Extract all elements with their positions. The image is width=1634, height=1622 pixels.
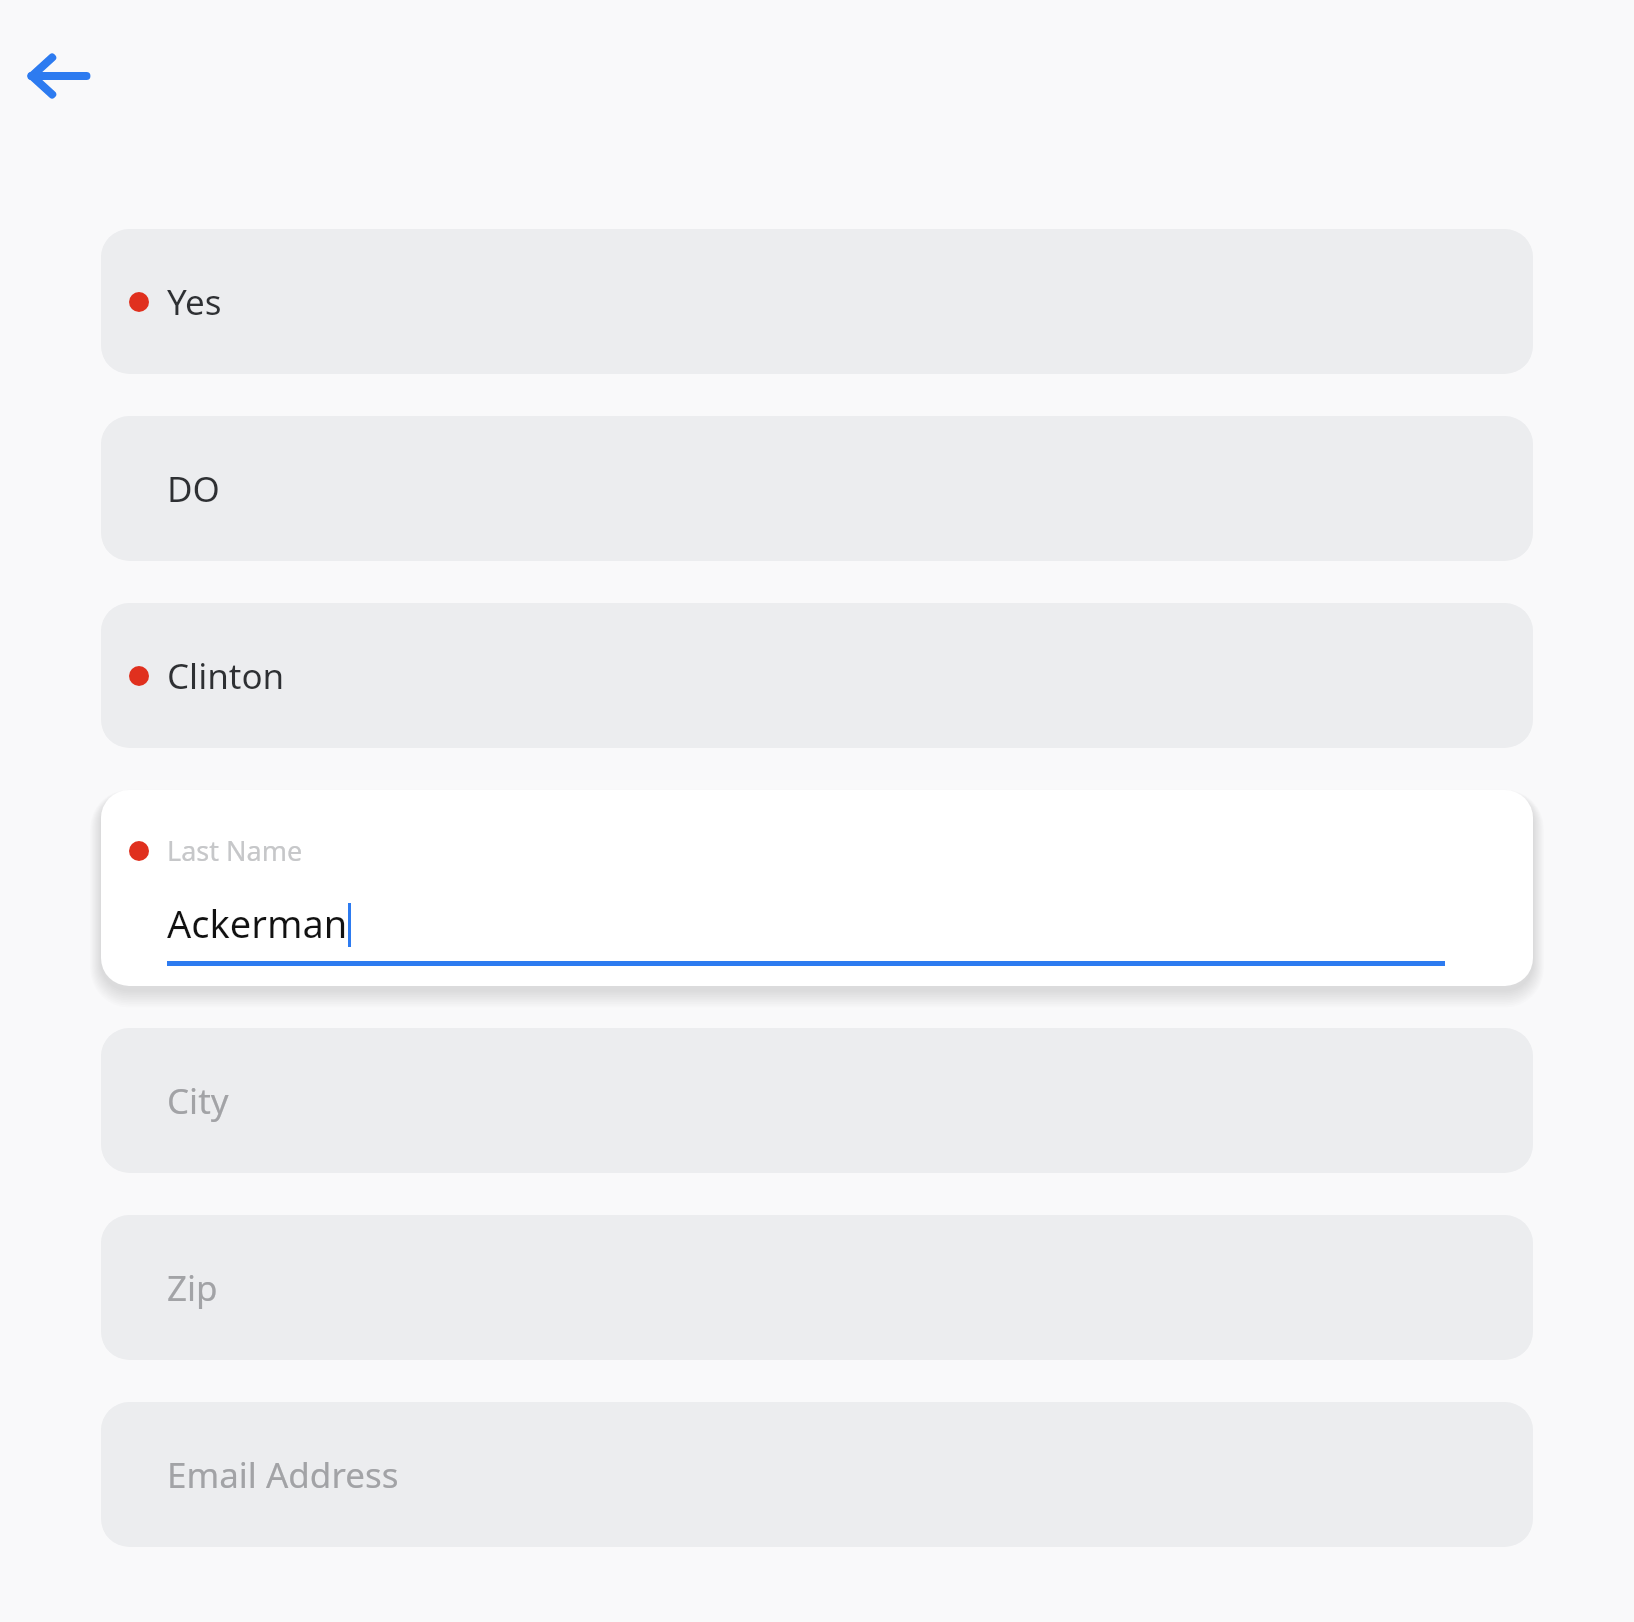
staticText: Last Name xyxy=(167,832,303,869)
button[interactable]: DO xyxy=(101,416,1533,561)
staticText: DO xyxy=(167,465,220,513)
button[interactable]: Zip xyxy=(101,1215,1533,1360)
button[interactable]: Yes xyxy=(101,229,1533,374)
staticText: Clinton xyxy=(167,652,285,700)
button[interactable]: City xyxy=(101,1028,1533,1173)
staticText: City xyxy=(167,1077,229,1125)
staticText: Yes xyxy=(167,278,222,326)
staticText: Email Address xyxy=(167,1451,399,1499)
button[interactable]: Clinton xyxy=(101,603,1533,748)
staticText: Ackerman xyxy=(167,897,348,949)
staticText: Zip xyxy=(167,1264,218,1312)
button[interactable]: Last Name xyxy=(101,790,1533,986)
button[interactable]: Back xyxy=(8,30,108,122)
button[interactable]: Email Address xyxy=(101,1402,1533,1547)
